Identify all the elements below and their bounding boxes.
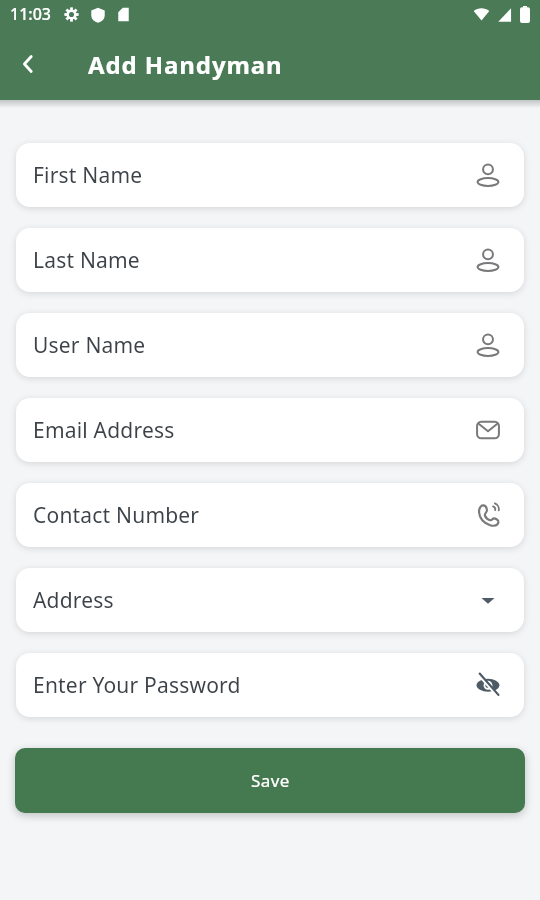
button[interactable]: First Name — [16, 143, 524, 207]
button[interactable]: Contact Number — [16, 483, 524, 547]
button[interactable]: Email Address — [16, 398, 524, 462]
staticText: First Name — [33, 161, 143, 190]
staticText: User Name — [33, 331, 146, 360]
staticText: Last Name — [33, 246, 140, 275]
staticText: Address — [33, 586, 114, 615]
button[interactable]: Address — [16, 568, 524, 632]
button[interactable]: Save — [15, 748, 525, 813]
staticText: Enter Your Password — [33, 671, 241, 700]
staticText: 11:03 — [10, 3, 51, 25]
staticText: Save — [251, 769, 290, 792]
button[interactable]: Enter Your Password — [16, 653, 524, 717]
staticText: Email Address — [33, 416, 175, 445]
button[interactable]: User Name — [16, 313, 524, 377]
staticText: Contact Number — [33, 501, 200, 530]
button[interactable]: Last Name — [16, 228, 524, 292]
staticText: Add Handyman — [88, 48, 283, 81]
button[interactable] — [10, 46, 46, 82]
